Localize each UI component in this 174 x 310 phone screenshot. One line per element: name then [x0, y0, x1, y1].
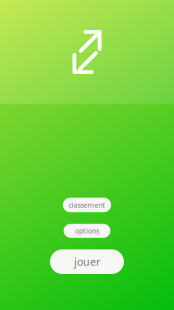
staticText: jouer [74, 254, 100, 269]
button[interactable]: jouer [50, 249, 124, 274]
button[interactable]: classement [63, 198, 111, 212]
staticText: classement [68, 200, 105, 210]
staticText: options [75, 226, 99, 236]
button[interactable]: options [64, 224, 110, 238]
